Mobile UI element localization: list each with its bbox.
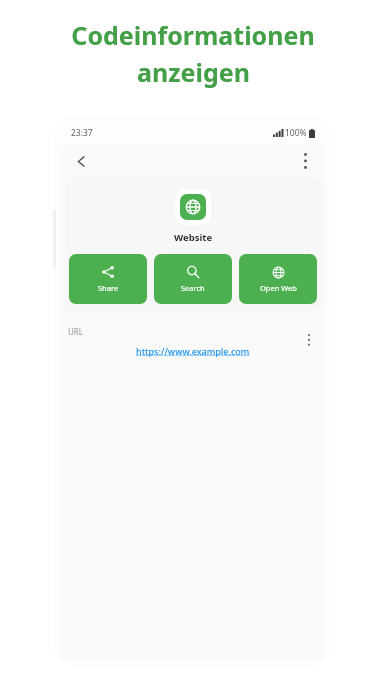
staticText: Website bbox=[174, 231, 213, 244]
button[interactable]: Search bbox=[154, 254, 232, 304]
button[interactable]: Open Web bbox=[239, 254, 317, 304]
staticText: Codeinformationen bbox=[71, 18, 315, 52]
staticText: Share bbox=[98, 283, 119, 293]
button[interactable]: Back bbox=[66, 146, 96, 176]
staticText: Open Web bbox=[260, 283, 297, 293]
staticText: URL bbox=[68, 326, 84, 337]
staticText: 23:37 bbox=[71, 127, 93, 139]
staticText: https://www.example.com bbox=[136, 345, 250, 357]
button[interactable]: URL options bbox=[299, 330, 319, 350]
button[interactable]: Share bbox=[69, 254, 147, 304]
staticText: anzeigen bbox=[137, 55, 250, 89]
staticText: 100% bbox=[285, 127, 307, 139]
staticText: Search bbox=[181, 283, 205, 293]
button[interactable]: URL bbox=[65, 320, 321, 370]
button[interactable]: More options bbox=[290, 146, 320, 176]
